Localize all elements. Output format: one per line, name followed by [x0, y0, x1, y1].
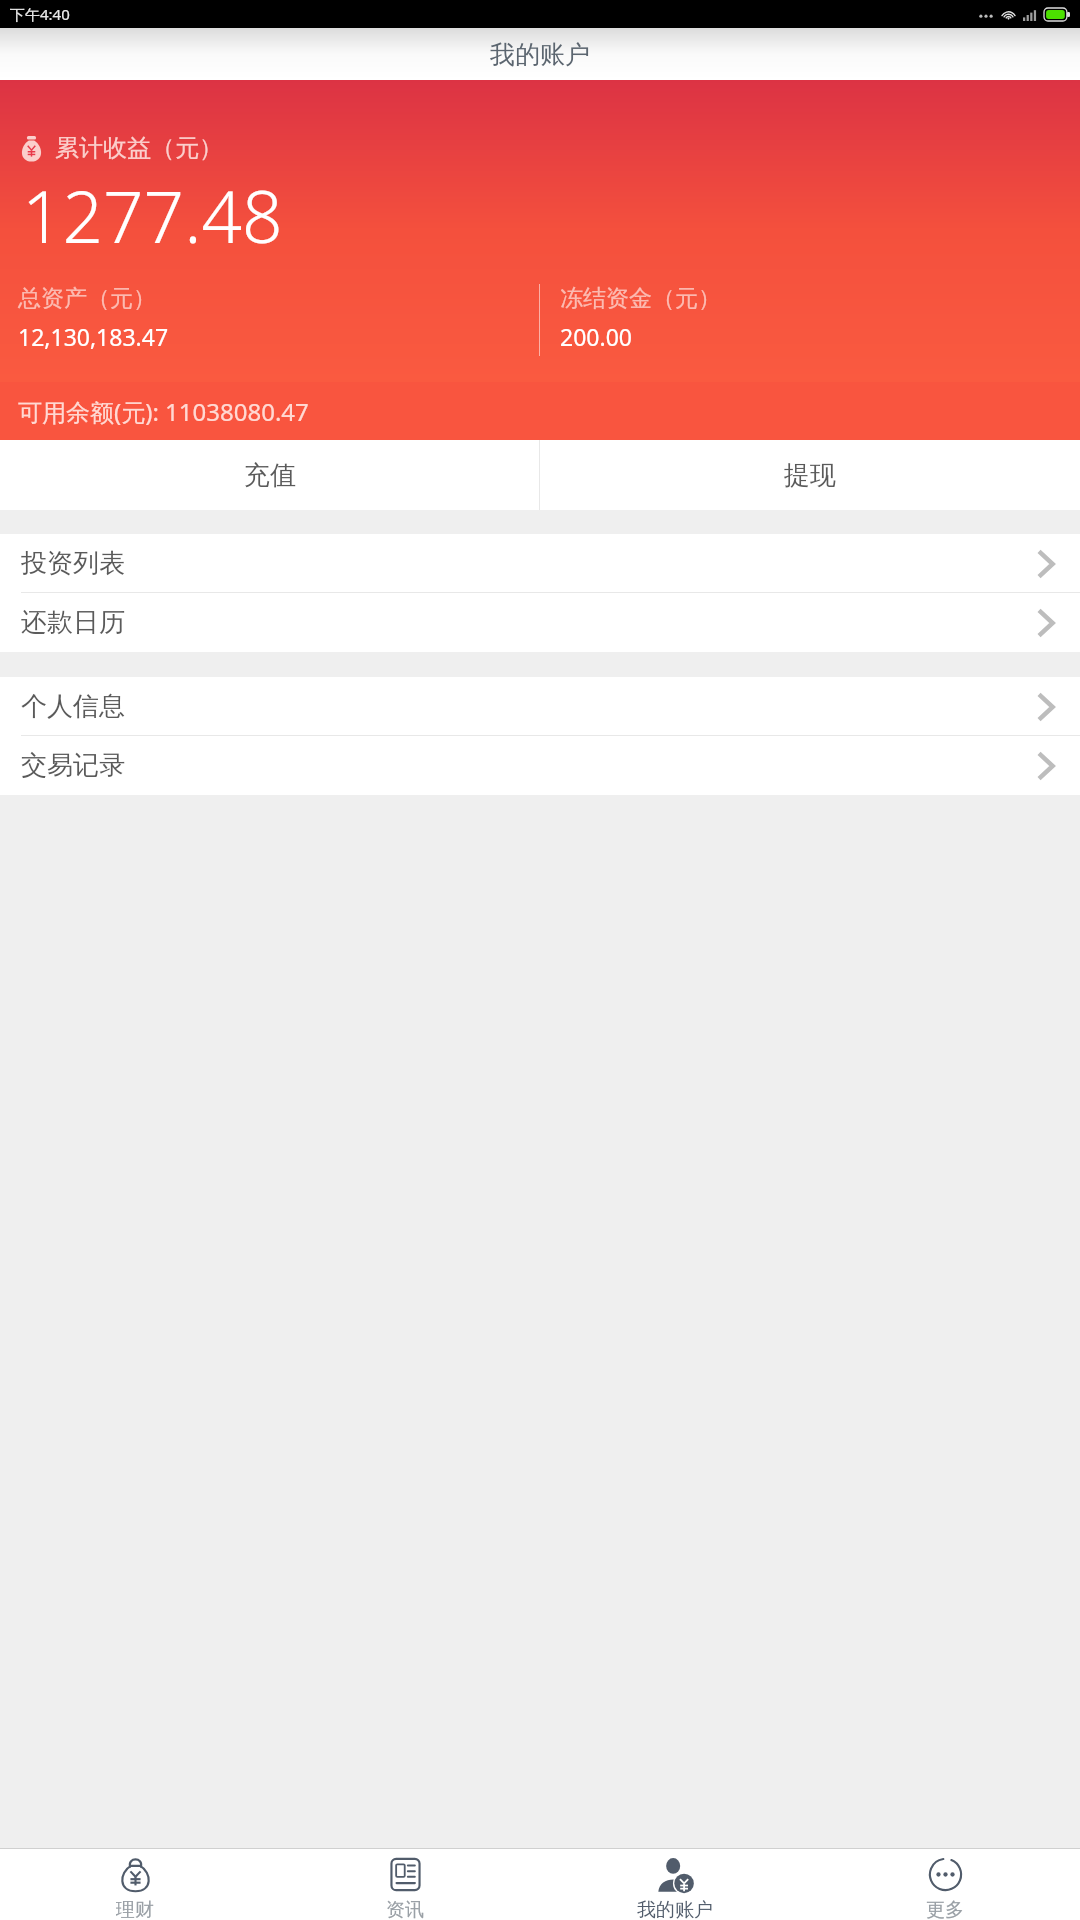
- staticText: 理财: [116, 1898, 154, 1920]
- staticText: 我的账户: [490, 39, 590, 70]
- staticText: 总资产（元）: [18, 284, 156, 313]
- button[interactable]: 投资列表: [0, 534, 1080, 593]
- staticText: 1277.48: [22, 167, 283, 264]
- button[interactable]: 提现: [540, 440, 1080, 510]
- button[interactable]: 充值: [0, 440, 539, 510]
- button[interactable]: 交易记录: [0, 736, 1080, 795]
- staticText: 充值: [244, 459, 296, 492]
- staticText: 冻结资金（元）: [560, 284, 721, 313]
- staticText: 我的账户: [637, 1898, 713, 1920]
- staticText: 投资列表: [21, 547, 1037, 580]
- staticText: 可用余额(元): 11038080.47: [18, 395, 309, 428]
- staticText: 下午4:40: [10, 4, 70, 24]
- staticText: 交易记录: [21, 749, 1037, 782]
- button[interactable]: 理财: [0, 1849, 270, 1920]
- staticText: 提现: [784, 459, 836, 492]
- staticText: 资讯: [386, 1898, 424, 1920]
- button[interactable]: 还款日历: [0, 593, 1080, 652]
- button[interactable]: 个人信息: [0, 677, 1080, 736]
- staticText: 还款日历: [21, 606, 1037, 639]
- button[interactable]: 我的账户: [540, 1849, 810, 1920]
- staticText: 200.00: [560, 321, 632, 352]
- staticText: 累计收益（元）: [55, 133, 223, 163]
- button[interactable]: 更多: [810, 1849, 1080, 1920]
- staticText: 12,130,183.47: [18, 321, 169, 352]
- staticText: 个人信息: [21, 690, 1037, 723]
- staticText: 更多: [926, 1898, 964, 1920]
- button[interactable]: 资讯: [270, 1849, 540, 1920]
